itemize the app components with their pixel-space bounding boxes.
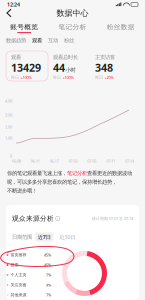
staticText: 昨日 <box>53 75 61 80</box>
staticText: 其他来源 <box>11 292 27 297</box>
staticText: +20% <box>105 75 114 80</box>
staticText: 06-11 <box>31 158 40 164</box>
button[interactable]: 数据趋势 <box>6 36 26 45</box>
staticText: 观看总时长 <box>53 54 78 61</box>
staticText: 日期范围 <box>12 234 32 240</box>
button[interactable]: 主页访客 <box>90 51 132 81</box>
staticText: 观看 <box>11 54 21 61</box>
button[interactable]: 观看 <box>32 36 42 45</box>
button[interactable]: 观看 <box>6 51 48 81</box>
staticText: 近7日 <box>38 233 51 241</box>
staticText: 小时 <box>65 67 75 73</box>
staticText: 07-11 <box>106 158 115 164</box>
staticText: 首页推荐 <box>11 252 27 257</box>
staticText: 粉丝数据 <box>107 23 135 31</box>
staticText: 44 <box>53 61 65 75</box>
staticText: 近30日 <box>59 233 75 241</box>
staticText: 粉丝 <box>64 37 74 44</box>
staticText: 笔记分析 <box>58 23 86 31</box>
button[interactable]: 账号概览 <box>0 22 48 34</box>
staticText: 统计周期 07-07 至 07-14 <box>92 216 133 221</box>
button[interactable]: Back <box>2 7 16 19</box>
staticText: 查看更近的数据波动 <box>87 170 132 177</box>
staticText: 昨日 <box>11 75 19 80</box>
staticText: 数据中心 <box>56 8 88 18</box>
staticText: +100% <box>63 75 74 80</box>
staticText: 呢，可以多多分享您喜欢的笔记，保持增长趋势， <box>7 179 117 185</box>
staticText: 12:24 <box>7 1 20 8</box>
staticText: 昨日 <box>95 75 103 80</box>
staticText: 互动 <box>48 37 58 44</box>
staticText: 观看 <box>32 37 42 44</box>
staticText: 45% <box>44 252 51 258</box>
staticText: 关注页面 <box>11 282 27 287</box>
staticText: 7% <box>46 292 51 298</box>
staticText: 06-08 <box>12 158 21 164</box>
staticText: 观众来源分析 <box>12 214 54 223</box>
button[interactable]: 观看总时长 <box>48 51 90 81</box>
button[interactable]: 粉丝数据 <box>97 22 145 34</box>
staticText: 4% <box>46 282 51 288</box>
staticText: 2.00 <box>5 124 12 130</box>
staticText: 13429 <box>11 61 41 75</box>
staticText: 06-17 <box>50 158 59 164</box>
staticText: +100% <box>21 75 32 80</box>
button[interactable]: 近7日 <box>35 232 54 242</box>
button[interactable]: 笔记分析 <box>48 22 97 34</box>
staticText: 数据趋势 <box>6 37 26 44</box>
staticText: 07-05 <box>87 158 96 164</box>
staticText: 07-14 <box>125 158 134 164</box>
staticText: 搜索 <box>11 262 19 267</box>
staticText: 不断进步哦！ <box>7 187 37 194</box>
button[interactable]: 互动 <box>48 36 58 45</box>
staticText: 主页访客 <box>95 54 115 61</box>
staticText: 1.00 <box>5 135 12 141</box>
staticText: 0 <box>10 153 12 159</box>
staticText: 账号概览 <box>10 23 38 31</box>
staticText: 07-02 <box>68 158 77 164</box>
staticText: 3.00 <box>5 112 12 118</box>
staticText: 笔记分析 <box>67 170 87 177</box>
button[interactable]: 近30日 <box>57 232 78 242</box>
staticText: 7% <box>46 272 51 278</box>
staticText: 348 <box>95 61 113 75</box>
staticText: 45% <box>44 262 51 268</box>
staticText: 4.00 <box>5 98 12 104</box>
button[interactable]: 粉丝 <box>64 36 74 45</box>
staticText: 你的笔记观看量飞速上涨， <box>7 170 67 177</box>
staticText: 个人主页 <box>11 272 27 277</box>
